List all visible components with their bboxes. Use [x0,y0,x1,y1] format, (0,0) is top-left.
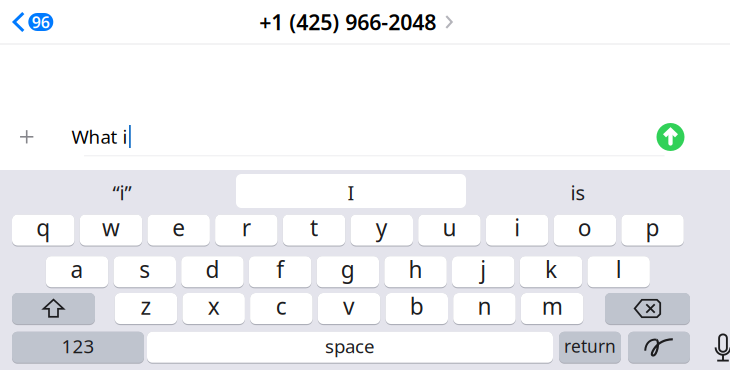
staticText: r [242,212,251,242]
staticText: I [347,179,354,206]
button[interactable]: p [621,214,684,245]
staticText: c [276,291,287,321]
staticText: 123 [61,334,94,358]
staticText: f [276,254,284,284]
staticText: i [514,212,520,242]
staticText: p [646,212,660,242]
staticText: h [409,254,423,284]
button[interactable]: Shift [12,293,95,324]
staticText: y [376,212,388,242]
staticText: w [102,212,120,242]
staticText: e [172,212,185,242]
button[interactable]: return [559,332,621,363]
staticText: m [542,291,563,321]
button[interactable]: Back, 96 unread [2,0,63,44]
button[interactable]: j [452,256,514,287]
button[interactable]: Delete [605,293,690,324]
button[interactable]: Dictate [708,331,730,364]
button[interactable]: o [554,214,616,245]
staticText: +1 (425) 966-2048 [259,8,436,36]
staticText: g [341,254,355,284]
button[interactable]: c [250,293,313,324]
button[interactable]: g [317,256,379,287]
button[interactable]: z [115,293,177,324]
button[interactable]: m [521,293,583,324]
staticText: b [410,291,424,321]
staticText: “i” [112,179,131,206]
button[interactable]: Add attachment [7,117,47,157]
button[interactable]: space [147,332,553,363]
button[interactable]: e [147,214,210,245]
button[interactable]: s [113,256,176,287]
button[interactable]: u [418,214,481,245]
button[interactable]: Handwriting [628,332,690,363]
staticText: s [139,254,150,284]
button[interactable]: q [12,214,74,245]
button[interactable]: a [46,256,108,287]
button[interactable]: d [181,256,244,287]
staticText: t [310,212,318,242]
staticText: k [545,254,557,284]
staticText: space [325,334,375,358]
staticText: j [480,254,486,284]
staticText: z [140,291,151,321]
button[interactable]: r [215,214,278,245]
staticText: u [442,212,456,242]
staticText: 96 [32,11,50,33]
staticText: l [616,254,622,284]
staticText: return [564,334,616,357]
staticText: is [570,179,585,206]
staticText: x [208,291,220,321]
button[interactable]: h [384,256,447,287]
button[interactable]: n [453,293,516,324]
staticText: q [36,212,50,242]
button[interactable]: k [520,256,582,287]
button[interactable]: l [587,256,650,287]
button[interactable]: w [80,214,142,245]
button[interactable]: v [318,293,380,324]
staticText: d [205,254,219,284]
button[interactable]: f [249,256,311,287]
button[interactable]: I [236,174,466,208]
button[interactable]: is [467,174,689,208]
staticText: What i [71,124,127,149]
staticText: o [578,212,592,242]
button[interactable]: +1 (425) 966-2048 [259,0,453,44]
button[interactable]: i [486,214,548,245]
button[interactable]: y [350,214,413,245]
button[interactable]: b [385,293,448,324]
staticText: n [477,291,491,321]
button[interactable]: “i” [11,174,233,208]
staticText: v [343,291,355,321]
button[interactable]: 123 [12,332,144,363]
button[interactable]: t [283,214,345,245]
button[interactable]: Send [652,119,688,155]
staticText: a [70,254,83,284]
button[interactable]: x [182,293,245,324]
